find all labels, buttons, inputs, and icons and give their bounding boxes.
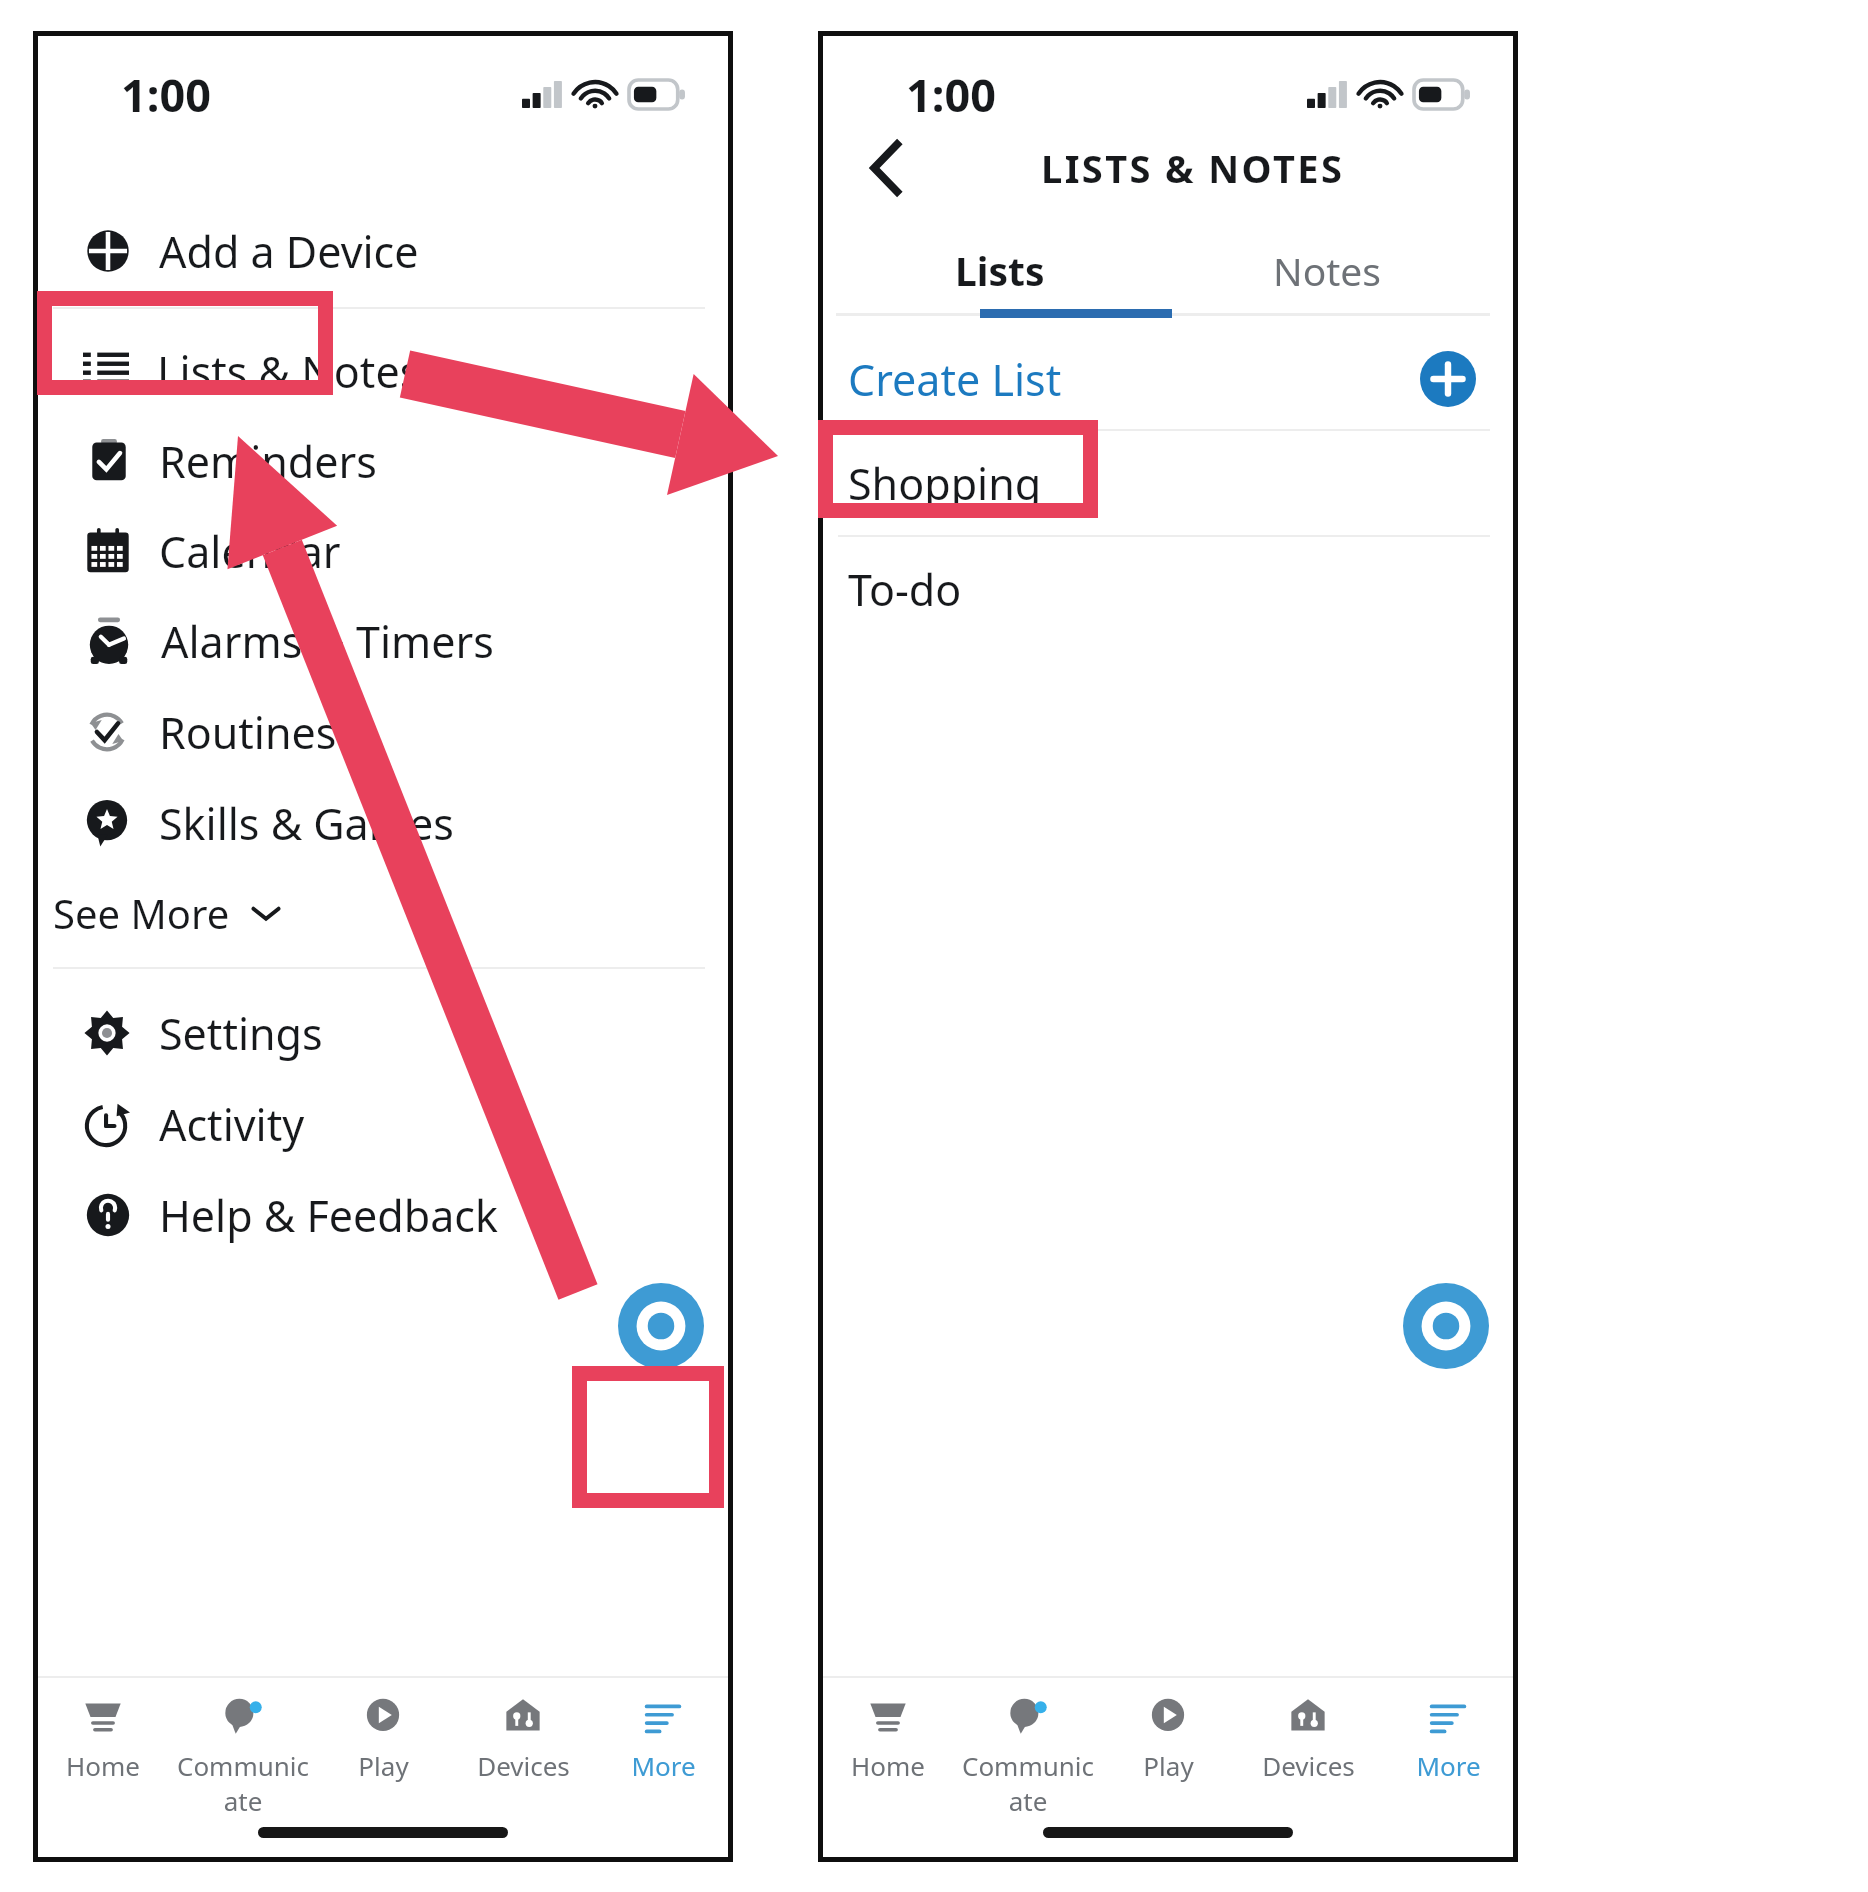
- button[interactable]: Routines: [33, 688, 723, 776]
- button[interactable]: Create List: [818, 331, 1508, 427]
- button[interactable]: Activity: [33, 1080, 723, 1168]
- staticText: Communicate: [173, 1748, 313, 1818]
- staticText: Home: [851, 1748, 925, 1783]
- button[interactable]: Communicate: [173, 1690, 313, 1820]
- button[interactable]: Home: [818, 1690, 958, 1820]
- staticText: Add a Device: [159, 222, 419, 281]
- staticText: Play: [1143, 1748, 1194, 1783]
- staticText: More: [1416, 1748, 1481, 1783]
- staticText: Create List: [848, 350, 1062, 409]
- staticText: See More: [53, 886, 230, 940]
- button[interactable]: Devices: [453, 1690, 593, 1820]
- button[interactable]: Communicate: [958, 1690, 1098, 1820]
- staticText: Devices: [477, 1748, 570, 1783]
- staticText: Lists & Notes: [157, 342, 421, 401]
- button[interactable]: Talk to Alexa: [1403, 1283, 1489, 1369]
- staticText: Devices: [1262, 1748, 1355, 1783]
- button[interactable]: Devices: [1238, 1690, 1378, 1820]
- button[interactable]: Back: [842, 125, 928, 211]
- button[interactable]: Skills & Games: [33, 779, 723, 867]
- staticText: Shopping: [848, 454, 1042, 513]
- staticText: LISTS & NOTES: [1041, 142, 1345, 194]
- staticText: 1:00: [121, 64, 211, 125]
- button[interactable]: More: [1378, 1690, 1518, 1820]
- staticText: Calendar: [159, 522, 341, 581]
- staticText: Routines: [159, 703, 337, 762]
- button[interactable]: Talk to Alexa: [618, 1283, 704, 1369]
- button[interactable]: To-do: [818, 537, 1508, 641]
- button[interactable]: Alarms & Timers: [33, 597, 723, 685]
- staticText: Settings: [159, 1004, 323, 1063]
- button[interactable]: More: [593, 1690, 733, 1820]
- button[interactable]: Calendar: [33, 507, 723, 595]
- staticText: Home: [66, 1748, 140, 1783]
- button[interactable]: Reminders: [33, 417, 723, 505]
- staticText: Notes: [1273, 244, 1381, 297]
- button[interactable]: Notes: [1163, 227, 1490, 313]
- button[interactable]: Home: [33, 1690, 173, 1820]
- staticText: Play: [358, 1748, 409, 1783]
- button[interactable]: Play: [313, 1690, 453, 1820]
- staticText: Activity: [159, 1095, 305, 1154]
- staticText: 1:00: [906, 64, 996, 125]
- staticText: Reminders: [159, 432, 377, 491]
- staticText: Communicate: [958, 1748, 1098, 1818]
- button[interactable]: Add a Device: [33, 207, 723, 295]
- button[interactable]: Shopping: [818, 431, 1508, 535]
- button[interactable]: See More: [53, 871, 353, 955]
- button[interactable]: Play: [1098, 1690, 1238, 1820]
- button[interactable]: Lists & Notes: [33, 327, 723, 415]
- button[interactable]: Settings: [33, 989, 723, 1077]
- staticText: Skills & Games: [159, 794, 454, 853]
- staticText: Lists: [955, 244, 1045, 297]
- staticText: To-do: [848, 560, 962, 619]
- staticText: Help & Feedback: [159, 1186, 498, 1245]
- button[interactable]: Help & Feedback: [33, 1171, 723, 1259]
- staticText: Alarms & Timers: [161, 612, 494, 671]
- button[interactable]: Lists: [836, 227, 1163, 313]
- staticText: More: [631, 1748, 696, 1783]
